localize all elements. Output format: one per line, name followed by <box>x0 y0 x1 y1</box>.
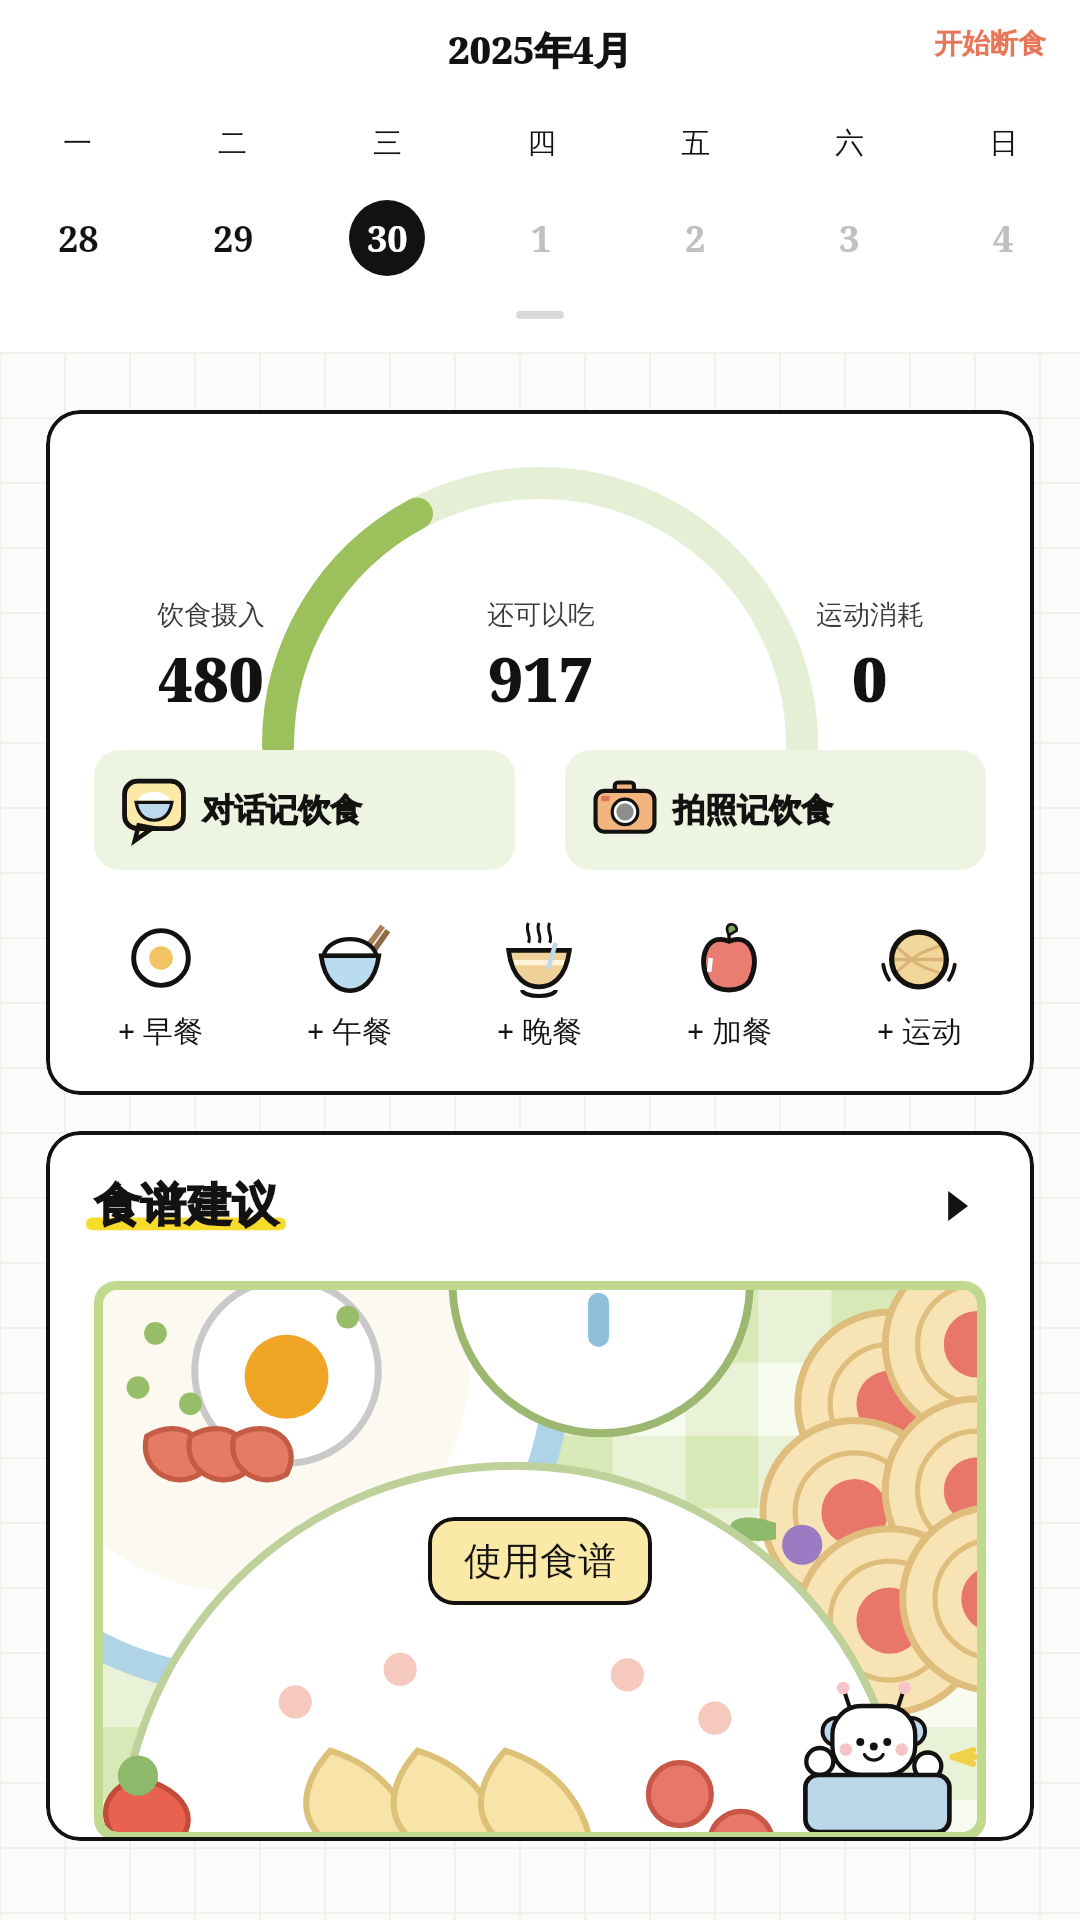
staticText: 3 <box>839 214 860 263</box>
staticText: 还可以吃 <box>487 598 595 632</box>
button[interactable]: + 午餐 <box>255 916 444 1055</box>
staticText: 二 <box>218 125 247 162</box>
button[interactable]: 自动记录 <box>791 1682 971 1832</box>
button[interactable]: + 运动 <box>824 916 1014 1055</box>
staticText: 2025年4月 <box>448 23 633 75</box>
staticText: 480 <box>158 636 264 720</box>
staticText: 对话记饮食 <box>202 790 362 830</box>
staticText: 日 <box>989 125 1018 162</box>
button[interactable]: 拍照记饮食 <box>565 750 986 870</box>
button[interactable]: 29 <box>155 192 310 284</box>
button[interactable]: 1 <box>464 192 618 284</box>
button[interactable]: + 加餐 <box>634 916 824 1055</box>
staticText: 0 <box>852 636 888 720</box>
staticText: 五 <box>681 125 710 162</box>
staticText: + 晚餐 <box>497 1010 582 1051</box>
staticText: 917 <box>488 636 594 720</box>
staticText: + 运动 <box>877 1010 962 1051</box>
button[interactable]: 使用食谱 <box>428 1517 652 1605</box>
staticText: 29 <box>213 214 254 263</box>
button[interactable]: + 早餐 <box>66 916 255 1055</box>
staticText: + 早餐 <box>118 1010 203 1051</box>
staticText: 四 <box>527 125 556 162</box>
button[interactable]: 28 <box>0 192 155 284</box>
staticText: 28 <box>58 214 99 263</box>
button[interactable]: 使用食谱 <box>103 1290 977 1832</box>
button[interactable]: 开始断食 <box>926 16 1054 71</box>
button[interactable]: 4 <box>926 192 1080 284</box>
staticText: 使用食谱 <box>464 1537 616 1585</box>
staticText: 开始断食 <box>934 26 1046 61</box>
staticText: 拍照记饮食 <box>673 790 833 830</box>
button[interactable]: 2 <box>618 192 772 284</box>
staticText: + 加餐 <box>687 1010 772 1051</box>
button[interactable]: 30 <box>310 192 464 284</box>
staticText: + 午餐 <box>307 1010 392 1051</box>
button[interactable]: 3 <box>772 192 926 284</box>
button[interactable]: 对话记饮食 <box>94 750 515 870</box>
staticText: 三 <box>373 125 402 162</box>
button[interactable]: + 晚餐 <box>444 916 634 1055</box>
staticText: 4 <box>993 214 1014 263</box>
staticText: 饮食摄入 <box>157 598 265 632</box>
staticText: 运动消耗 <box>816 598 924 632</box>
staticText: 六 <box>835 125 864 162</box>
staticText: 30 <box>367 214 408 263</box>
staticText: 2 <box>685 214 706 263</box>
staticText: 食谱建议 <box>94 1177 278 1235</box>
staticText: 1 <box>531 214 552 263</box>
button[interactable]: More recipes <box>926 1176 986 1236</box>
staticText: 一 <box>63 125 92 162</box>
